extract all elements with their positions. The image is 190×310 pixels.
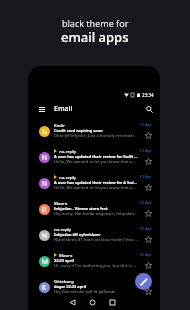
staticText: Email xyxy=(54,104,73,114)
staticText: Hej meny, Här börde någonsin, Inbjudan h… xyxy=(54,211,138,217)
button[interactable]: Star xyxy=(144,287,152,295)
button[interactable]: Recents xyxy=(106,296,118,308)
button[interactable]: Menu xyxy=(35,102,49,116)
button[interactable]: Star xyxy=(144,261,152,269)
staticText: N xyxy=(42,153,47,162)
staticText: 12 Apr xyxy=(139,226,152,232)
button[interactable]: N xyxy=(28,170,160,196)
staticText: Mauro xyxy=(54,200,68,206)
button[interactable]: G xyxy=(28,118,160,144)
button[interactable]: N xyxy=(28,222,160,248)
staticText: black theme for xyxy=(62,17,129,29)
staticText: M xyxy=(42,257,48,266)
staticText: 13 Apr xyxy=(139,174,152,180)
button[interactable]: Star xyxy=(144,183,152,191)
staticText: no-reply xyxy=(59,174,76,180)
staticText: dagar 22:23 april xyxy=(54,284,87,289)
button[interactable]: Search xyxy=(142,102,156,116)
button[interactable]: Compose xyxy=(135,273,152,290)
staticText: N xyxy=(42,231,47,240)
staticText: A user has updated their review for Swif… xyxy=(54,154,138,159)
staticText: 22:23 april xyxy=(54,258,74,263)
staticText: email apps xyxy=(61,28,129,46)
staticText: B xyxy=(42,205,47,214)
staticText: 12 Apr xyxy=(139,252,152,258)
staticText: Inbjudan - Vårens stora fest xyxy=(54,206,108,211)
staticText: Hej Överskrider pdf få gällande xyxy=(54,289,116,295)
staticText: Göteborg xyxy=(54,278,74,284)
staticText: Hello, We wanted to let you know that a … xyxy=(54,185,138,191)
staticText: Dear @Perlycike; Just a friendly reminde… xyxy=(54,133,138,139)
staticText: G xyxy=(42,127,47,136)
staticText: K xyxy=(42,283,47,292)
button[interactable]: B xyxy=(28,196,160,222)
staticText: 13 Apr xyxy=(139,148,152,154)
staticText: Hello, We wanted to let you know that a … xyxy=(54,159,138,165)
button[interactable]: N xyxy=(28,144,160,170)
staticText: Mauro xyxy=(59,252,73,258)
staticText: Hi, sorry if I'm bothering you, but this… xyxy=(54,263,138,269)
button[interactable]: Star xyxy=(144,235,152,243)
staticText: 12 Apr xyxy=(139,278,152,284)
button[interactable]: K xyxy=(28,274,160,300)
staticText: A user has updated their review for A Sw… xyxy=(54,180,138,185)
button[interactable]: M xyxy=(28,248,160,274)
staticText: Kadir xyxy=(54,122,65,128)
staticText: 23:34 xyxy=(142,92,154,98)
button[interactable]: Home xyxy=(86,296,98,308)
button[interactable]: Star xyxy=(144,209,152,217)
staticText: 12 Apr xyxy=(139,200,152,206)
staticText: no-reply xyxy=(54,226,71,232)
staticText: Inbjudan till nyhetsbrev xyxy=(54,232,101,237)
staticText: Credit card expiring soon xyxy=(54,128,103,133)
staticText: 13 Apr xyxy=(139,122,152,128)
staticText: N xyxy=(42,179,47,188)
staticText: Nyhetsbrev #1 Svårt att läsa-mailet? Vis… xyxy=(54,237,138,243)
button[interactable]: Back xyxy=(66,296,78,308)
staticText: no-reply xyxy=(59,148,76,154)
button[interactable]: Star xyxy=(144,131,152,139)
button[interactable]: Star xyxy=(144,157,152,165)
